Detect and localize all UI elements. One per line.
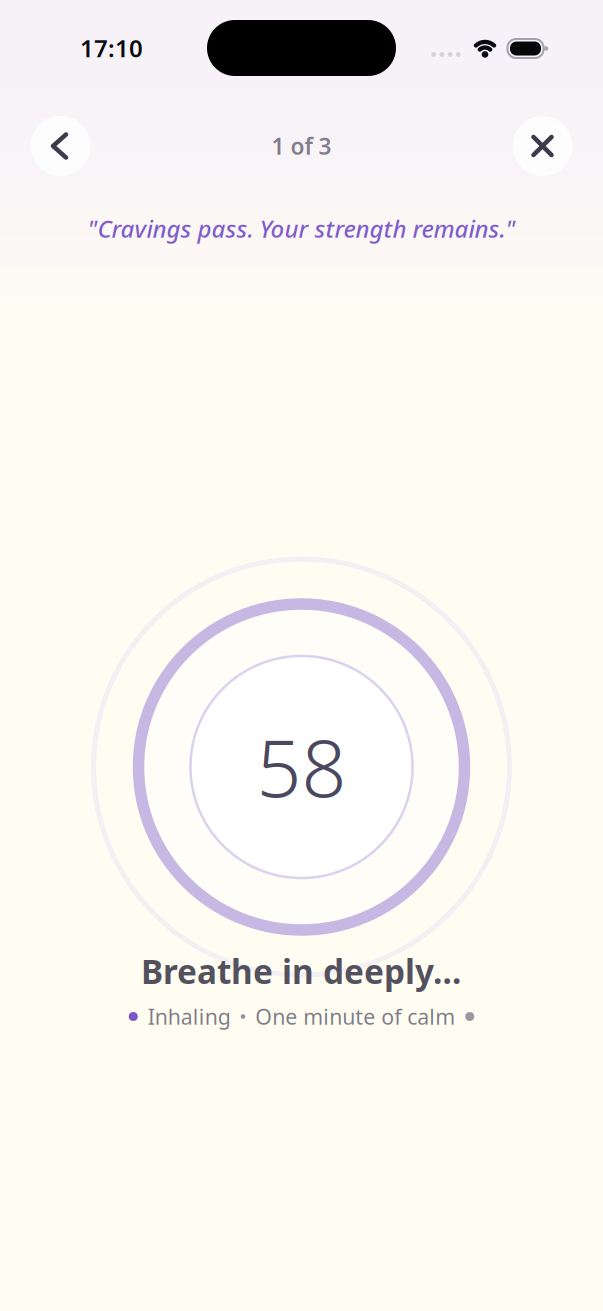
staticText: Breathe in deeply… xyxy=(141,949,462,993)
button[interactable]: Close xyxy=(512,116,572,176)
staticText: Inhaling xyxy=(148,1002,231,1031)
staticText: "Cravings pass. Your strength remains." xyxy=(87,213,515,244)
button[interactable]: Back xyxy=(30,116,90,176)
staticText: 1 of 3 xyxy=(271,131,331,161)
staticText: 58 xyxy=(256,714,346,819)
staticText: One minute of calm xyxy=(255,1002,455,1031)
staticText: 17:10 xyxy=(80,32,143,64)
